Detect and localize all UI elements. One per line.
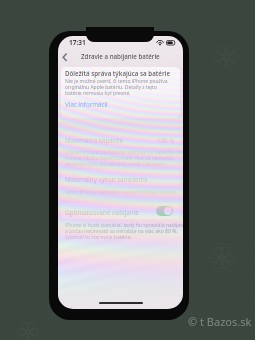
staticText: skrátenú dobu používania medzi nabitiami… (65, 161, 167, 168)
staticText: 17:31 (69, 38, 86, 47)
staticText: Dôležitá správa týkajúca sa batérie (65, 69, 171, 77)
staticText: Viac informácií (65, 100, 108, 108)
button[interactable]: Back (58, 49, 71, 62)
staticText: Udávaná kapacita batérie relatívne ku ka… (65, 149, 183, 156)
staticText: Zdravie a nabíjanie batérie (81, 52, 160, 60)
staticText: Nie je možné overiť, či tento iPhone pou… (65, 78, 168, 85)
staticText: batérie nemusia byť presné. (65, 90, 131, 97)
staticText: 100 % (157, 136, 175, 144)
staticText: a počas nečinnosti sa nenabije na viac a… (65, 228, 178, 235)
staticText: Tento iPhone nedokáže stanoviť zdravie b… (65, 189, 178, 196)
staticText: batérie. Nižšia kapacita môže mať za nás… (65, 155, 173, 162)
staticText: Optimalizované nabíjanie (65, 208, 139, 216)
staticText: Spomalí to starnutie batérie. (65, 234, 132, 241)
staticText: Maximálny výkon zariadenia (65, 175, 148, 183)
staticText: iPhone si bude pamätať, kedy ho spravidl… (65, 222, 183, 229)
button[interactable]: Viac informácií (65, 100, 108, 108)
staticText: © t Bazos.sk (188, 314, 252, 329)
staticText: Maximálna kapacita (65, 136, 124, 144)
staticText: originálnu Apple batériu. Detaily z tejt… (65, 84, 157, 91)
button[interactable]: Optimalizované nabíjanie (156, 206, 173, 216)
